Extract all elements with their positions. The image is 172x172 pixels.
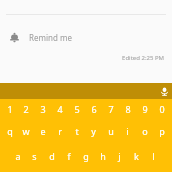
button[interactable]: 5 <box>68 99 85 118</box>
staticText: u <box>108 125 114 137</box>
button[interactable]: u <box>102 118 119 143</box>
staticText: Remind me <box>29 32 72 43</box>
staticText: r <box>58 125 62 137</box>
staticText: l <box>152 150 155 162</box>
staticText: 1 <box>7 103 13 115</box>
button[interactable]: 7 <box>102 99 119 118</box>
button[interactable]: g <box>77 143 94 168</box>
button[interactable]: d <box>43 143 60 168</box>
staticText: s <box>32 150 37 162</box>
staticText: f <box>67 150 71 162</box>
button[interactable]: 6 <box>85 99 102 118</box>
button[interactable]: k <box>128 143 145 168</box>
staticText: 6 <box>91 103 97 115</box>
staticText: 2 <box>23 103 29 115</box>
button[interactable]: 1 <box>2 99 18 118</box>
button[interactable]: j <box>111 143 128 168</box>
staticText: 8 <box>125 103 131 115</box>
button[interactable]: t <box>68 118 85 143</box>
staticText: y <box>91 125 96 137</box>
button[interactable]: 9 <box>136 99 153 118</box>
button[interactable]: r <box>51 118 68 143</box>
staticText: g <box>83 150 89 162</box>
staticText: 5 <box>74 103 80 115</box>
staticText: i <box>126 125 129 137</box>
staticText: 3 <box>40 103 46 115</box>
button[interactable]: h <box>94 143 111 168</box>
staticText: 7 <box>108 103 114 115</box>
staticText: 0 <box>159 103 165 115</box>
button[interactable]: f <box>60 143 77 168</box>
button[interactable]: Remind me <box>0 28 172 46</box>
staticText: w <box>22 125 30 137</box>
staticText: e <box>40 125 46 137</box>
staticText: o <box>142 125 148 137</box>
button[interactable]: a <box>10 143 26 168</box>
staticText: p <box>159 125 165 137</box>
button[interactable]: 0 <box>153 99 170 118</box>
staticText: h <box>100 150 106 162</box>
button[interactable]: w <box>18 118 34 143</box>
staticText: q <box>7 125 13 137</box>
button[interactable]: 3 <box>34 99 51 118</box>
staticText: 4 <box>57 103 63 115</box>
staticText: d <box>49 150 55 162</box>
staticText: k <box>134 150 139 162</box>
staticText: 9 <box>142 103 148 115</box>
button[interactable]: y <box>85 118 102 143</box>
button[interactable]: e <box>34 118 51 143</box>
button[interactable]: p <box>153 118 170 143</box>
button[interactable]: q <box>2 118 18 143</box>
button[interactable]: l <box>145 143 162 168</box>
staticText: Edited 2:25 PM <box>0 54 164 62</box>
button[interactable]: o <box>136 118 153 143</box>
staticText: j <box>118 150 121 162</box>
button[interactable]: 8 <box>119 99 136 118</box>
button[interactable]: 4 <box>51 99 68 118</box>
staticText: a <box>15 150 21 162</box>
button[interactable]: 2 <box>18 99 34 118</box>
button[interactable]: Voice input <box>156 83 172 99</box>
button[interactable]: s <box>26 143 43 168</box>
button[interactable]: i <box>119 118 136 143</box>
other: Remind me <box>9 32 20 43</box>
staticText: t <box>75 125 79 137</box>
